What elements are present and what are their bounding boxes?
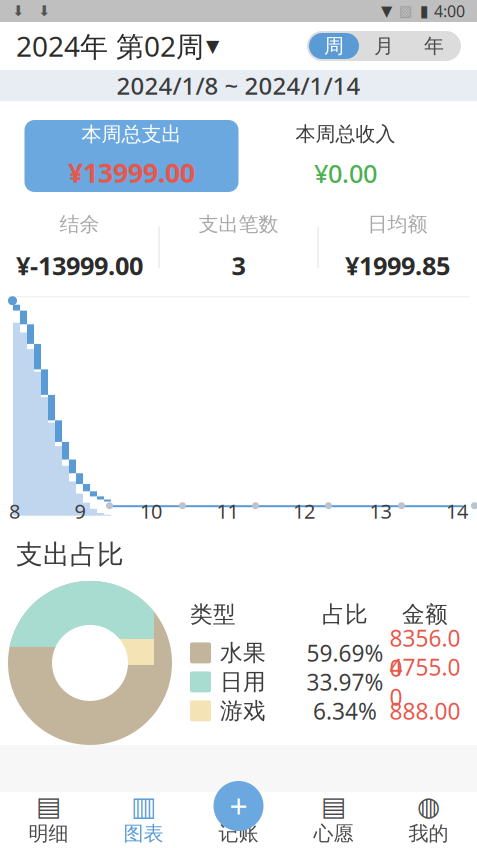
button[interactable]: 记账 <box>213 781 263 831</box>
button[interactable]: 本周总支出 <box>24 120 238 192</box>
staticText: ▥ <box>131 791 156 821</box>
staticText: ▼ <box>206 36 219 56</box>
staticText: 12 <box>293 498 315 524</box>
staticText: ▮ <box>420 2 429 20</box>
button[interactable]: 周 <box>309 33 359 59</box>
staticText: 游戏 <box>220 697 266 725</box>
staticText: + <box>229 785 247 827</box>
staticText: 类型 <box>190 600 236 628</box>
staticText: 2024/1/8 ~ 2024/1/14 <box>116 70 360 101</box>
staticText: 心愿 <box>313 821 353 846</box>
staticText: ¥0.00 <box>314 156 377 190</box>
staticText: ▤ <box>321 791 346 821</box>
staticText: 6.34% <box>313 696 377 726</box>
button[interactable]: 游戏 <box>190 696 462 725</box>
button[interactable]: ▥ <box>96 792 191 848</box>
button[interactable]: ◍ <box>381 792 476 848</box>
button[interactable]: 年 <box>409 33 459 59</box>
staticText: ◍ <box>417 791 440 821</box>
staticText: 8356.00 <box>389 623 460 683</box>
staticText: ¥13999.00 <box>68 155 195 190</box>
staticText: 14 <box>446 498 468 524</box>
staticText: 8 <box>9 498 20 524</box>
staticText: 金额 <box>402 600 448 628</box>
button[interactable]: ▤ <box>286 792 381 848</box>
button[interactable]: 日用 <box>190 667 462 696</box>
staticText: 4:00 <box>434 0 465 22</box>
button[interactable]: 本周总收入 <box>238 120 452 192</box>
staticText: 占比 <box>322 600 368 628</box>
staticText: ▤ <box>36 791 61 821</box>
staticText: 9 <box>74 498 85 524</box>
staticText: 13 <box>369 498 391 524</box>
staticText: 4755.00 <box>389 652 460 712</box>
staticText: 水果 <box>220 639 266 667</box>
staticText: 本周总支出 <box>81 122 181 147</box>
staticText: ▨ <box>399 3 413 19</box>
staticText: ¥1999.85 <box>345 249 450 282</box>
staticText: 周 <box>324 34 344 58</box>
staticText: 日均额 <box>367 212 427 237</box>
button[interactable]: 2024年 第02周 <box>16 21 219 71</box>
staticText: 10 <box>140 498 162 524</box>
staticText: ⬇ <box>38 3 50 19</box>
staticText: 33.97% <box>306 667 383 697</box>
staticText: 11 <box>216 498 238 524</box>
staticText: ⬇ <box>12 3 24 19</box>
button[interactable] <box>191 792 286 848</box>
staticText: 我的 <box>408 821 448 846</box>
staticText: 支出笔数 <box>198 212 278 237</box>
staticText: 3 <box>231 249 245 282</box>
staticText: 888.00 <box>389 696 460 726</box>
staticText: 记账 <box>218 821 258 846</box>
staticText: 59.69% <box>306 638 383 668</box>
button[interactable]: ▤ <box>1 792 96 848</box>
staticText: 本周总收入 <box>295 122 395 146</box>
staticText: 结余 <box>59 212 99 237</box>
staticText: 图表 <box>123 821 163 846</box>
staticText: ▼ <box>381 3 392 19</box>
staticText: 年 <box>424 34 444 58</box>
staticText: 支出占比 <box>16 538 124 571</box>
staticText: 月 <box>374 34 394 58</box>
staticText: 日用 <box>220 668 266 696</box>
button[interactable]: 月 <box>359 33 409 59</box>
staticText: ¥-13999.00 <box>16 249 143 282</box>
button[interactable]: 水果 <box>190 638 462 667</box>
staticText: 2024年 第02周 <box>16 27 204 65</box>
staticText: 明细 <box>28 821 68 846</box>
